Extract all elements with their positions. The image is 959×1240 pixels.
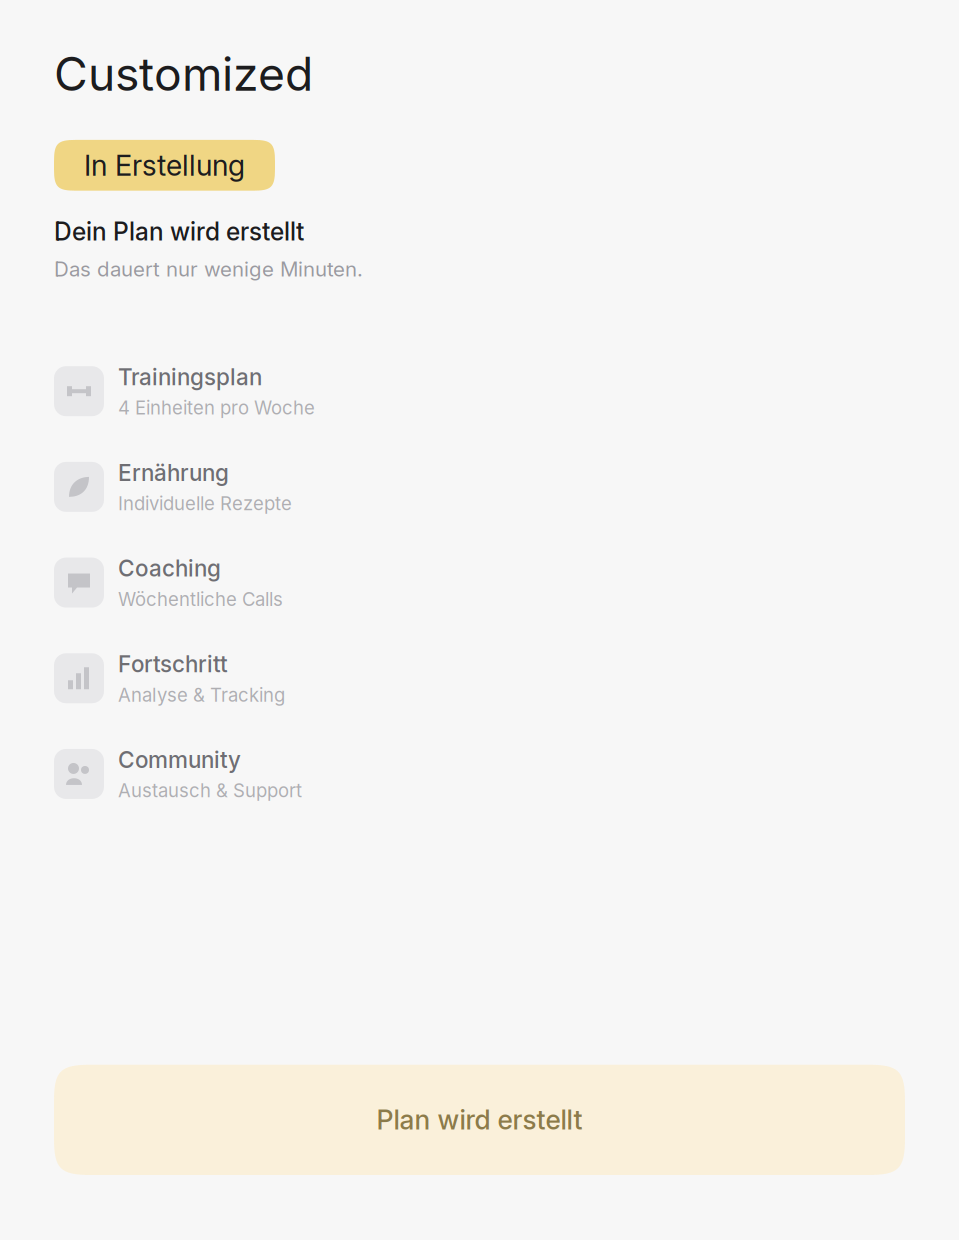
staticText: Ernährung (118, 459, 229, 486)
staticText: Fortschritt (118, 650, 228, 678)
button[interactable]: In Erstellung (54, 140, 275, 191)
staticText: Plan wird erstellt (376, 1104, 582, 1136)
staticText: Trainingsplan (118, 363, 262, 391)
staticText: 4 Einheiten pro Woche (118, 397, 315, 419)
button[interactable]: Trainingsplan (54, 343, 905, 439)
staticText: Coaching (118, 555, 221, 582)
staticText: Customized (54, 46, 313, 102)
staticText: Individuelle Rezepte (118, 492, 292, 515)
button[interactable]: Plan wird erstellt (54, 1065, 905, 1175)
staticText: Analyse & Tracking (118, 684, 285, 706)
staticText: Community (118, 746, 241, 773)
button[interactable]: Community (54, 726, 905, 822)
staticText: In Erstellung (84, 148, 245, 183)
staticText: Das dauert nur wenige Minuten. (54, 256, 363, 281)
staticText: Austausch & Support (118, 779, 302, 802)
staticText: Dein Plan wird erstellt (54, 217, 304, 246)
button[interactable]: Ernährung (54, 439, 905, 535)
button[interactable]: Coaching (54, 535, 905, 630)
button[interactable]: Fortschritt (54, 630, 905, 726)
staticText: Wöchentliche Calls (118, 588, 283, 610)
